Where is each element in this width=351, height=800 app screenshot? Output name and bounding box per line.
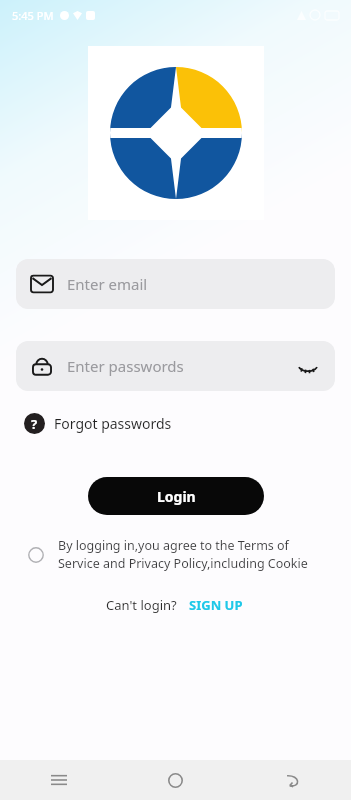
button[interactable]: SIGN UP [187, 594, 245, 616]
staticText: By logging in,you agree to the Terms of … [58, 537, 325, 572]
button[interactable]: ? [22, 409, 174, 438]
button[interactable]: Login [88, 477, 264, 515]
staticText: Login [157, 487, 196, 506]
button[interactable]: Enter email [16, 259, 335, 309]
staticText: SIGN UP [189, 596, 243, 614]
button[interactable]: Recent apps [0, 760, 117, 800]
staticText: Enter email [67, 274, 148, 294]
button[interactable]: By logging in,you agree to the Terms of … [0, 537, 351, 572]
staticText: ? [31, 415, 38, 433]
staticText: Forgot passwords [54, 414, 172, 433]
staticText: Enter passwords [67, 356, 295, 376]
button[interactable]: Back [234, 760, 351, 800]
button[interactable]: Enter passwords [16, 341, 335, 391]
button[interactable]: Home [117, 760, 234, 800]
staticText: Can't login? [106, 596, 177, 614]
button[interactable]: Show password [295, 353, 321, 379]
staticText: 5:45 PM [12, 8, 54, 23]
